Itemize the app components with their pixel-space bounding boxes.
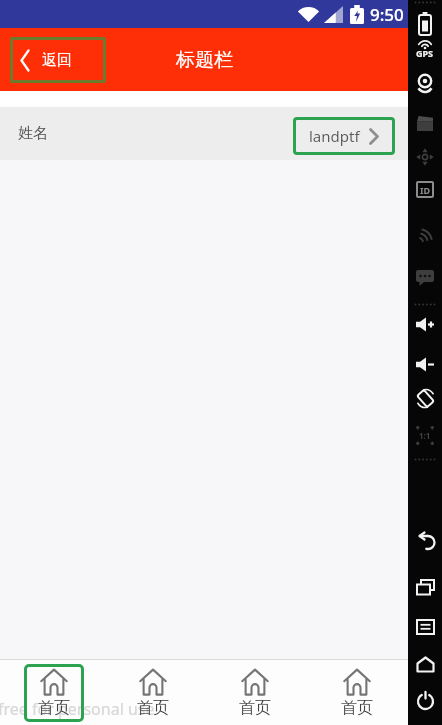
staticText: 首页 xyxy=(239,698,271,718)
staticText: 首页 xyxy=(137,698,169,718)
staticText: 返回 xyxy=(42,51,72,70)
staticText: free for personal use xyxy=(0,698,155,720)
staticText: GPS xyxy=(416,47,434,59)
button[interactable]: 首页 xyxy=(225,664,285,722)
button[interactable]: landptf xyxy=(293,117,395,155)
staticText: landptf xyxy=(309,126,360,146)
staticText: 姓名 xyxy=(18,124,48,143)
staticText: 首页 xyxy=(38,698,70,718)
staticText: 标题栏 xyxy=(176,48,233,72)
button[interactable]: 姓名 xyxy=(0,107,408,160)
button[interactable]: 首页 xyxy=(24,664,84,722)
button[interactable]: 返回 xyxy=(10,37,106,83)
staticText: 首页 xyxy=(341,698,373,718)
button[interactable]: 首页 xyxy=(123,664,183,722)
staticText: 1:1 xyxy=(419,430,431,441)
staticText: 9:50 xyxy=(370,3,404,26)
button[interactable]: 首页 xyxy=(327,664,387,722)
staticText: ID xyxy=(420,184,431,196)
